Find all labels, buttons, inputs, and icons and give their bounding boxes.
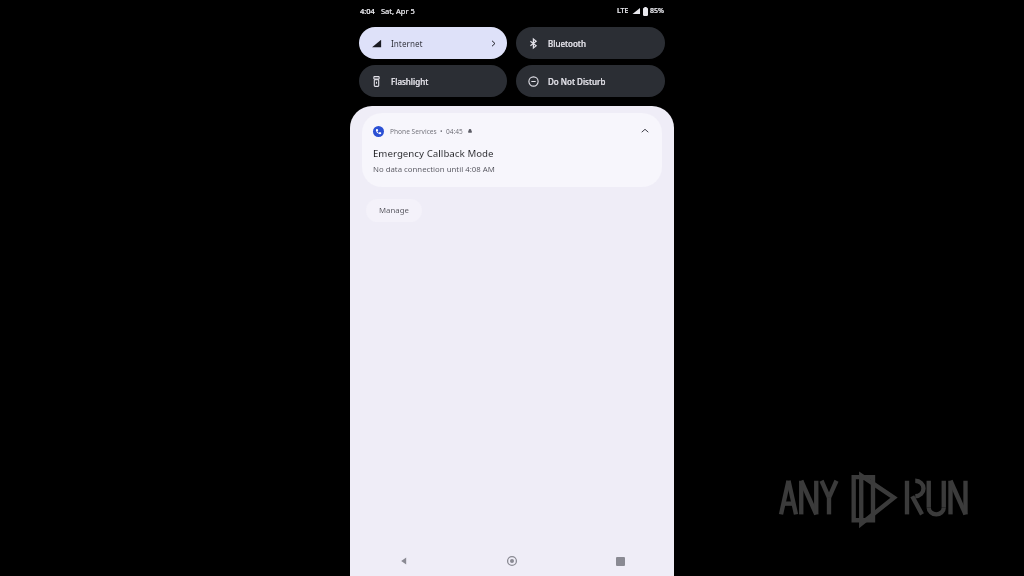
- staticText: Manage: [379, 205, 409, 216]
- button[interactable]: Home: [458, 546, 566, 576]
- staticText: Sat, Apr 5: [381, 6, 415, 16]
- staticText: Internet: [391, 38, 423, 49]
- button[interactable]: Manage: [366, 199, 422, 222]
- staticText: No data connection until 4:08 AM: [373, 164, 495, 175]
- staticText: 04:45: [446, 127, 463, 136]
- staticText: LTE: [617, 6, 629, 16]
- staticText: 4:04: [360, 6, 375, 16]
- button[interactable]: Flashlight: [359, 65, 507, 97]
- staticText: 85%: [650, 6, 664, 16]
- staticText: •: [440, 127, 443, 136]
- button[interactable]: Collapse notification: [636, 122, 654, 140]
- button[interactable]: Recent apps: [566, 546, 674, 576]
- staticText: Do Not Disturb: [548, 76, 606, 87]
- button[interactable]: Back: [350, 546, 458, 576]
- staticText: Flashlight: [391, 76, 429, 87]
- staticText: Emergency Callback Mode: [373, 147, 494, 160]
- button[interactable]: Bluetooth: [516, 27, 665, 59]
- button[interactable]: Do Not Disturb: [516, 65, 665, 97]
- staticText: Phone Services: [390, 127, 437, 136]
- button[interactable]: Phone Services: [362, 113, 662, 187]
- button[interactable]: Internet: [359, 27, 507, 59]
- staticText: Bluetooth: [548, 38, 586, 49]
